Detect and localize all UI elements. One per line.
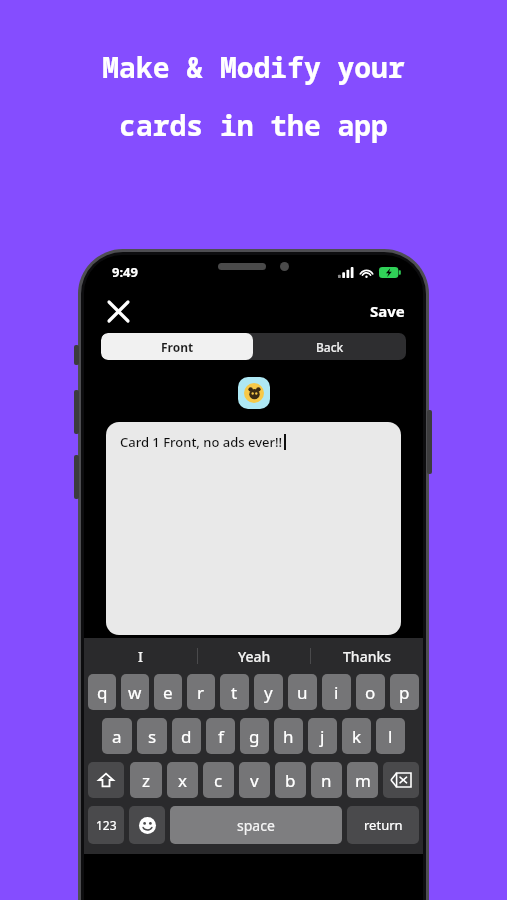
staticText: l [388, 725, 393, 748]
staticText: e [163, 681, 173, 704]
staticText: return [364, 816, 403, 834]
staticText: space [237, 816, 275, 835]
button[interactable]: l [376, 718, 405, 754]
button[interactable]: i [322, 674, 351, 710]
staticText: u [297, 681, 308, 704]
staticText: j [320, 725, 325, 748]
staticText: w [128, 681, 142, 704]
staticText: Thanks [343, 647, 392, 666]
button[interactable]: d [172, 718, 201, 754]
button[interactable]: h [274, 718, 303, 754]
button[interactable]: p [390, 674, 419, 710]
staticText: i [334, 681, 339, 704]
button[interactable]: s [137, 718, 167, 754]
staticText: I [138, 647, 143, 666]
button[interactable]: Close [98, 291, 138, 331]
button[interactable]: Shift [88, 762, 124, 798]
staticText: c [214, 769, 223, 792]
button[interactable]: f [206, 718, 235, 754]
button[interactable]: o [356, 674, 385, 710]
button[interactable]: r [187, 674, 215, 710]
button[interactable]: b [275, 762, 306, 798]
staticText: k [352, 725, 362, 748]
staticText: r [197, 681, 205, 704]
button[interactable]: e [154, 674, 182, 710]
button[interactable]: I [84, 638, 197, 674]
button[interactable]: 123 [88, 806, 124, 844]
button[interactable]: w [121, 674, 149, 710]
button[interactable]: v [239, 762, 270, 798]
staticText: a [112, 725, 122, 748]
staticText: Front [161, 339, 194, 355]
button[interactable]: return [347, 806, 419, 844]
button[interactable]: k [342, 718, 371, 754]
button[interactable]: t [220, 674, 249, 710]
button[interactable]: y [254, 674, 283, 710]
staticText: y [264, 681, 273, 704]
button[interactable]: n [311, 762, 342, 798]
staticText: o [365, 681, 376, 704]
staticText: z [142, 769, 150, 792]
button[interactable]: x [167, 762, 198, 798]
staticText: Card 1 Front, no ads ever!! [120, 433, 283, 451]
staticText: Back [316, 339, 344, 355]
button[interactable]: j [308, 718, 337, 754]
staticText: x [178, 769, 187, 792]
staticText: g [249, 725, 260, 748]
staticText: b [285, 769, 296, 792]
staticText: Make & Modify your [102, 48, 405, 86]
button[interactable]: c [203, 762, 234, 798]
staticText: cards in the app [119, 106, 388, 144]
button[interactable]: Emoji [129, 806, 165, 844]
button[interactable]: z [130, 762, 162, 798]
staticText: Yeah [238, 647, 271, 666]
button[interactable]: u [288, 674, 317, 710]
button[interactable]: Back [253, 333, 406, 360]
button[interactable]: Yeah [198, 638, 310, 674]
staticText: s [148, 725, 157, 748]
button[interactable]: Sticker [238, 377, 270, 409]
staticText: m [355, 769, 371, 792]
staticText: Save [370, 301, 405, 321]
staticText: v [250, 769, 259, 792]
button[interactable]: Front [101, 333, 253, 360]
staticText: p [399, 681, 410, 704]
staticText: q [97, 681, 108, 704]
button[interactable]: Card 1 Front, no ads ever!! [106, 422, 401, 635]
staticText: 9:49 [112, 263, 138, 281]
button[interactable]: Save [352, 293, 423, 329]
staticText: t [231, 681, 238, 704]
staticText: h [283, 725, 294, 748]
staticText: n [321, 769, 332, 792]
button[interactable]: Backspace [383, 762, 419, 798]
staticText: d [181, 725, 192, 748]
button[interactable]: space [170, 806, 342, 844]
button[interactable]: m [347, 762, 378, 798]
button[interactable]: Thanks [311, 638, 423, 674]
staticText: 123 [96, 817, 117, 833]
staticText: f [218, 725, 224, 748]
button[interactable]: q [88, 674, 116, 710]
button[interactable]: a [102, 718, 132, 754]
button[interactable]: g [240, 718, 269, 754]
